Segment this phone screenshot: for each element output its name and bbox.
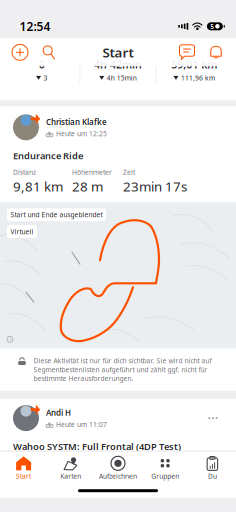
staticText: Heute um 12:25 [56, 129, 107, 138]
staticText: 4h 42min [94, 57, 142, 71]
staticText: Christian Klafke [46, 117, 107, 127]
staticText: 12:54 [19, 18, 50, 34]
staticText: Start und Ende ausgeblendet [10, 210, 102, 219]
staticText: 23min 17s [123, 178, 187, 195]
button[interactable]: Aufzeichnen [94, 451, 142, 484]
staticText: 28 m [72, 178, 103, 195]
staticText: Diese Aktivität ist nur für dich sichtba… [33, 356, 211, 383]
staticText: 3 [44, 73, 48, 82]
button[interactable]: Aktivität hinzufügen [9, 41, 31, 63]
staticText: Heute um 11:07 [56, 420, 107, 429]
button[interactable]: Nachrichten [176, 41, 198, 63]
button[interactable]: Du [189, 451, 236, 484]
button[interactable]: Start [0, 451, 47, 484]
staticText: Virtuell [10, 227, 33, 236]
button[interactable]: Mitteilungen [205, 41, 227, 63]
button[interactable]: Profilbild Andi H [13, 405, 39, 431]
staticText: Andi H [46, 407, 71, 418]
staticText: Du [208, 472, 217, 481]
button[interactable]: Suchen [38, 41, 60, 63]
staticText: 5 [210, 22, 214, 31]
staticText: Karten [60, 472, 81, 481]
button[interactable]: Weitere Optionen [203, 409, 223, 427]
staticText: Endurance Ride [13, 149, 83, 162]
staticText: 9,81 km [13, 178, 63, 195]
staticText: Start [16, 472, 31, 481]
staticText: Höhenmeter [72, 168, 112, 177]
staticText: 111,96 km [181, 73, 215, 82]
staticText: Zeit [123, 168, 135, 177]
staticText: 59,01 km [171, 57, 217, 71]
staticText: 4h 15min [107, 73, 137, 82]
button[interactable]: Profilbild Christian Klafke [13, 114, 39, 140]
staticText: Wahoo SYSTM: Full Frontal (4DP Test) [13, 440, 181, 452]
staticText: Start [102, 43, 133, 61]
staticText: Distanz [13, 168, 36, 177]
button[interactable]: Karten [47, 451, 94, 484]
staticText: Gruppen [151, 472, 179, 481]
button[interactable]: Gruppen [142, 451, 189, 484]
staticText: 0 [39, 57, 45, 71]
staticText: Aufzeichnen [99, 472, 137, 481]
